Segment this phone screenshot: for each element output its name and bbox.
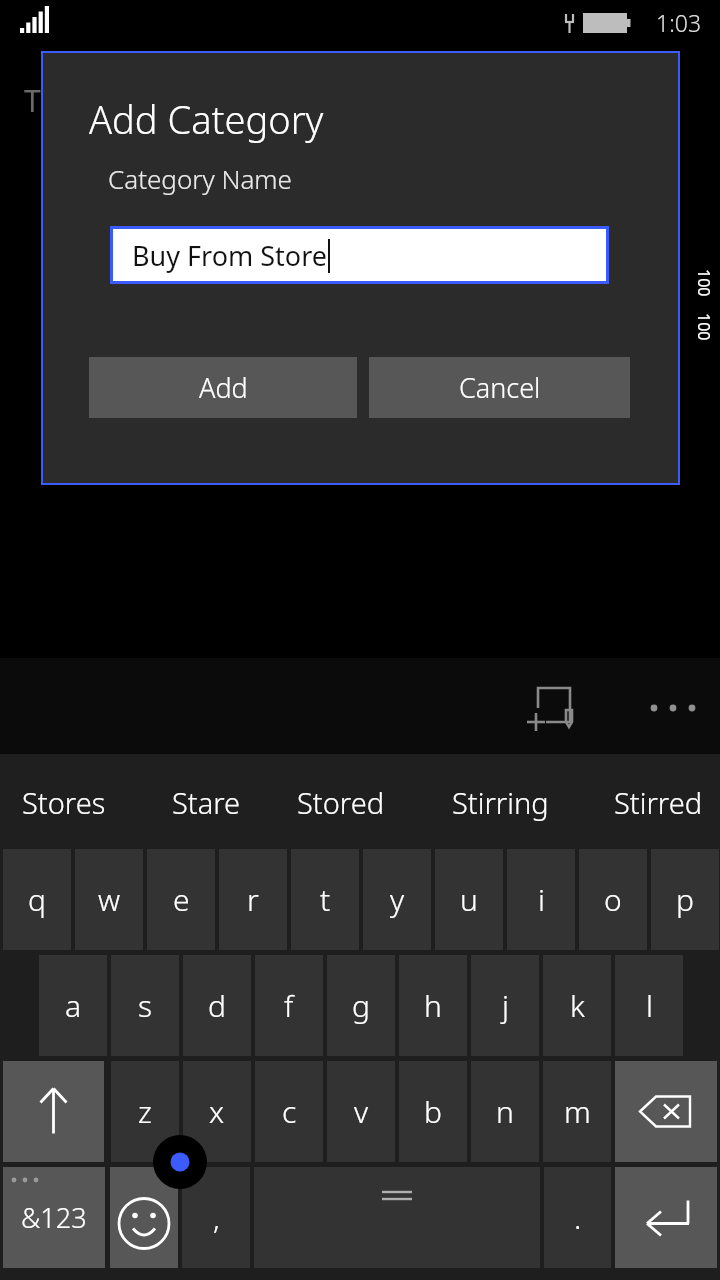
button[interactable]: h [399,955,467,1056]
staticText: Stores [22,783,106,822]
button[interactable]: r [219,849,287,950]
button[interactable]: Stare [162,768,251,836]
staticText: . [574,1197,582,1238]
button[interactable]: a [39,955,107,1056]
button[interactable]: v [327,1061,395,1162]
button[interactable]: . [544,1167,611,1268]
staticText: Stirred [614,783,703,822]
staticText: Add Category [89,93,324,145]
staticText: 100 [693,313,715,341]
staticText: y [390,879,405,920]
button[interactable]: y [363,849,431,950]
staticText: Category Name [108,161,292,196]
staticText: i [538,879,545,920]
staticText: p [676,879,694,920]
staticText: t [320,879,331,920]
button[interactable]: e [147,849,215,950]
button[interactable]: Shift [3,1061,104,1162]
staticText: q [28,879,46,920]
staticText: k [570,985,585,1026]
button[interactable]: Cancel [369,357,630,418]
staticText: f [284,985,294,1026]
staticText: n [496,1091,514,1132]
button[interactable]: f [255,955,323,1056]
button[interactable]: Stirred [604,768,713,836]
staticText: a [65,985,82,1026]
button[interactable]: Symbols [3,1167,105,1268]
staticText: r [247,879,259,920]
staticText: j [502,985,509,1026]
button[interactable]: Move keyboard [155,1137,205,1187]
button[interactable]: z [111,1061,179,1162]
staticText: Cancel [459,369,541,406]
staticText: h [424,985,442,1026]
button[interactable]: i [507,849,575,950]
staticText: s [138,985,153,1026]
button[interactable]: x [183,1061,251,1162]
button[interactable]: Enter [615,1167,717,1268]
staticText: g [352,985,370,1026]
button[interactable]: c [255,1061,323,1162]
button[interactable]: q [3,849,71,950]
staticText: m [564,1091,591,1132]
staticText: Add [199,369,248,406]
button[interactable]: New note [524,676,586,738]
button[interactable]: s [111,955,179,1056]
staticText: c [282,1091,297,1132]
staticText: l [646,985,653,1026]
button[interactable]: k [543,955,611,1056]
staticText: Stare [172,783,241,822]
staticText: Stirring [452,783,549,822]
button[interactable]: Stirring [442,768,559,836]
staticText: , [213,1197,220,1238]
staticText: z [138,1091,152,1132]
button[interactable]: m [543,1061,611,1162]
staticText: Buy From Store [132,237,327,274]
button[interactable]: b [399,1061,467,1162]
button[interactable]: w [75,849,143,950]
staticText: e [173,879,190,920]
button[interactable]: p [651,849,719,950]
staticText: x [209,1091,225,1132]
button[interactable]: Stores [12,768,116,836]
button[interactable]: g [327,955,395,1056]
staticText: u [460,879,478,920]
button[interactable]: t [291,849,359,950]
button[interactable]: Backspace [615,1061,717,1162]
staticText: 100 [693,269,715,297]
button[interactable]: More options [638,684,706,732]
button[interactable]: Stored [287,768,395,836]
button[interactable]: u [435,849,503,950]
button[interactable]: , [182,1167,250,1268]
button[interactable]: Add [89,357,357,418]
staticText: w [98,879,121,920]
staticText: o [604,879,622,920]
staticText: v [354,1091,369,1132]
staticText: &123 [21,1199,87,1236]
button[interactable]: Buy From Store [113,229,606,281]
button[interactable]: n [471,1061,539,1162]
staticText: T [24,80,41,121]
staticText: Stored [297,783,385,822]
button[interactable]: o [579,849,647,950]
staticText: b [424,1091,442,1132]
button[interactable]: j [471,955,539,1056]
button[interactable]: l [615,955,683,1056]
button[interactable]: d [183,955,251,1056]
button[interactable]: Space [254,1167,540,1268]
staticText: 1:03 [656,7,702,38]
staticText: d [208,985,226,1026]
button[interactable]: Emoji [110,1167,178,1268]
